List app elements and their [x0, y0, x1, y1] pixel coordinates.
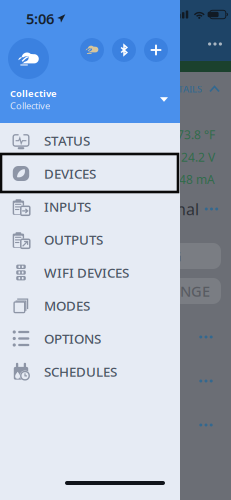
staticText: MODES [44, 297, 90, 314]
staticText: WIFI DEVICES [44, 264, 129, 281]
staticText: 73.8 °F [177, 127, 215, 142]
button[interactable]: INPUTS [0, 190, 180, 223]
staticText: INPUTS [44, 198, 91, 215]
button[interactable]: Bluetooth [112, 38, 136, 62]
staticText: SCHEDULES [44, 363, 117, 380]
staticText: nal [176, 198, 199, 220]
staticText: STATUS [44, 132, 90, 149]
button[interactable]: Add [144, 38, 168, 62]
button[interactable]: DEVICES [0, 157, 180, 190]
button[interactable]: MODES [0, 289, 180, 322]
staticText: OUTPUTS [44, 231, 103, 248]
button[interactable]: Cloud sync [80, 38, 104, 62]
button[interactable]: STATUS [0, 124, 180, 157]
staticText: Collective [10, 99, 50, 112]
button[interactable]: SCHEDULES [0, 355, 180, 388]
staticText: ANGE [170, 281, 210, 301]
button[interactable]: WIFI DEVICES [0, 256, 180, 289]
staticText: OPTIONS [44, 330, 101, 347]
button[interactable]: Switch collective [0, 86, 180, 112]
staticText: G [171, 246, 182, 266]
staticText: 5:06 [26, 9, 54, 28]
staticText: TAILS [178, 83, 202, 95]
button[interactable]: OUTPUTS [0, 223, 180, 256]
staticText: Collective [10, 87, 57, 99]
staticText: DEVICES [44, 165, 96, 182]
staticText: 48 mA [179, 171, 215, 187]
button[interactable]: Account [8, 38, 49, 79]
staticText: 24.2 V [181, 149, 215, 165]
button[interactable]: OPTIONS [0, 322, 180, 355]
